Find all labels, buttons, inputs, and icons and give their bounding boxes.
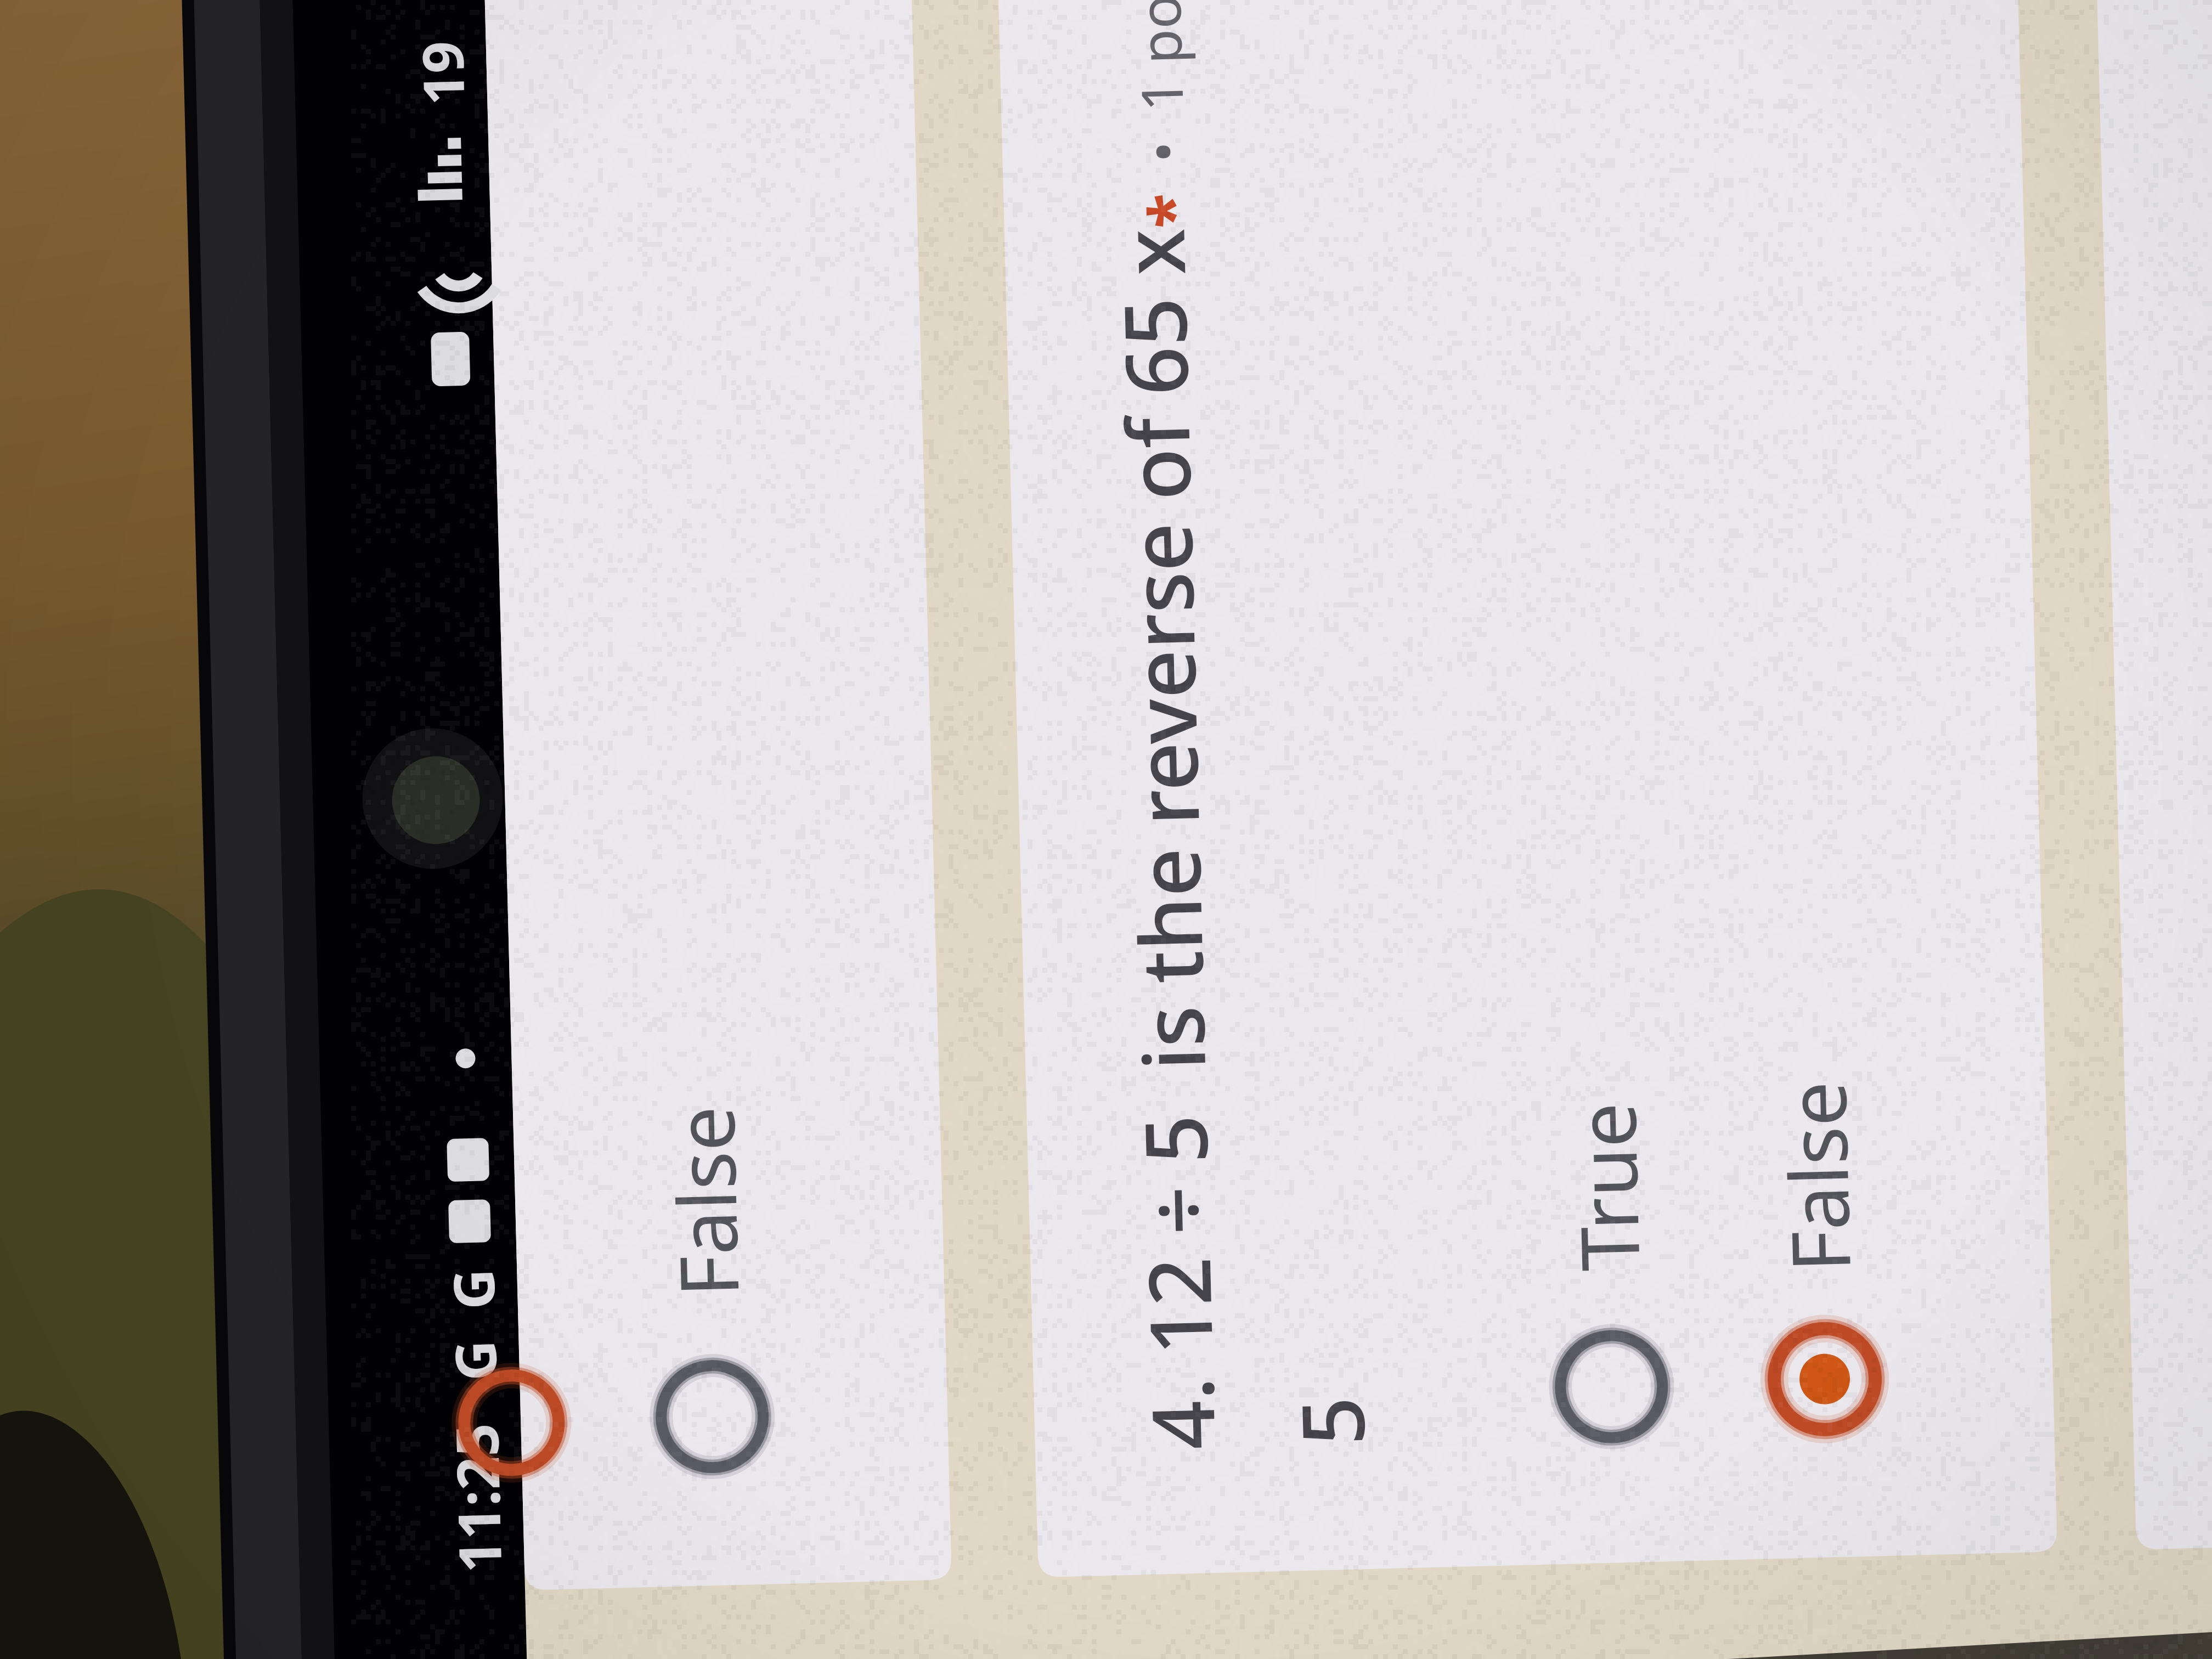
button[interactable]: Status bar, 11:25, battery 19 percent (379, 0, 510, 1659)
button[interactable]: False, selected (1745, 0, 1942, 1481)
button[interactable]: False (636, 0, 834, 1481)
button[interactable]: 4. 12 ÷ 5 is the reverse of 65 x 5, requ… (1042, 0, 1514, 1536)
button[interactable]: True (1536, 0, 1734, 1481)
